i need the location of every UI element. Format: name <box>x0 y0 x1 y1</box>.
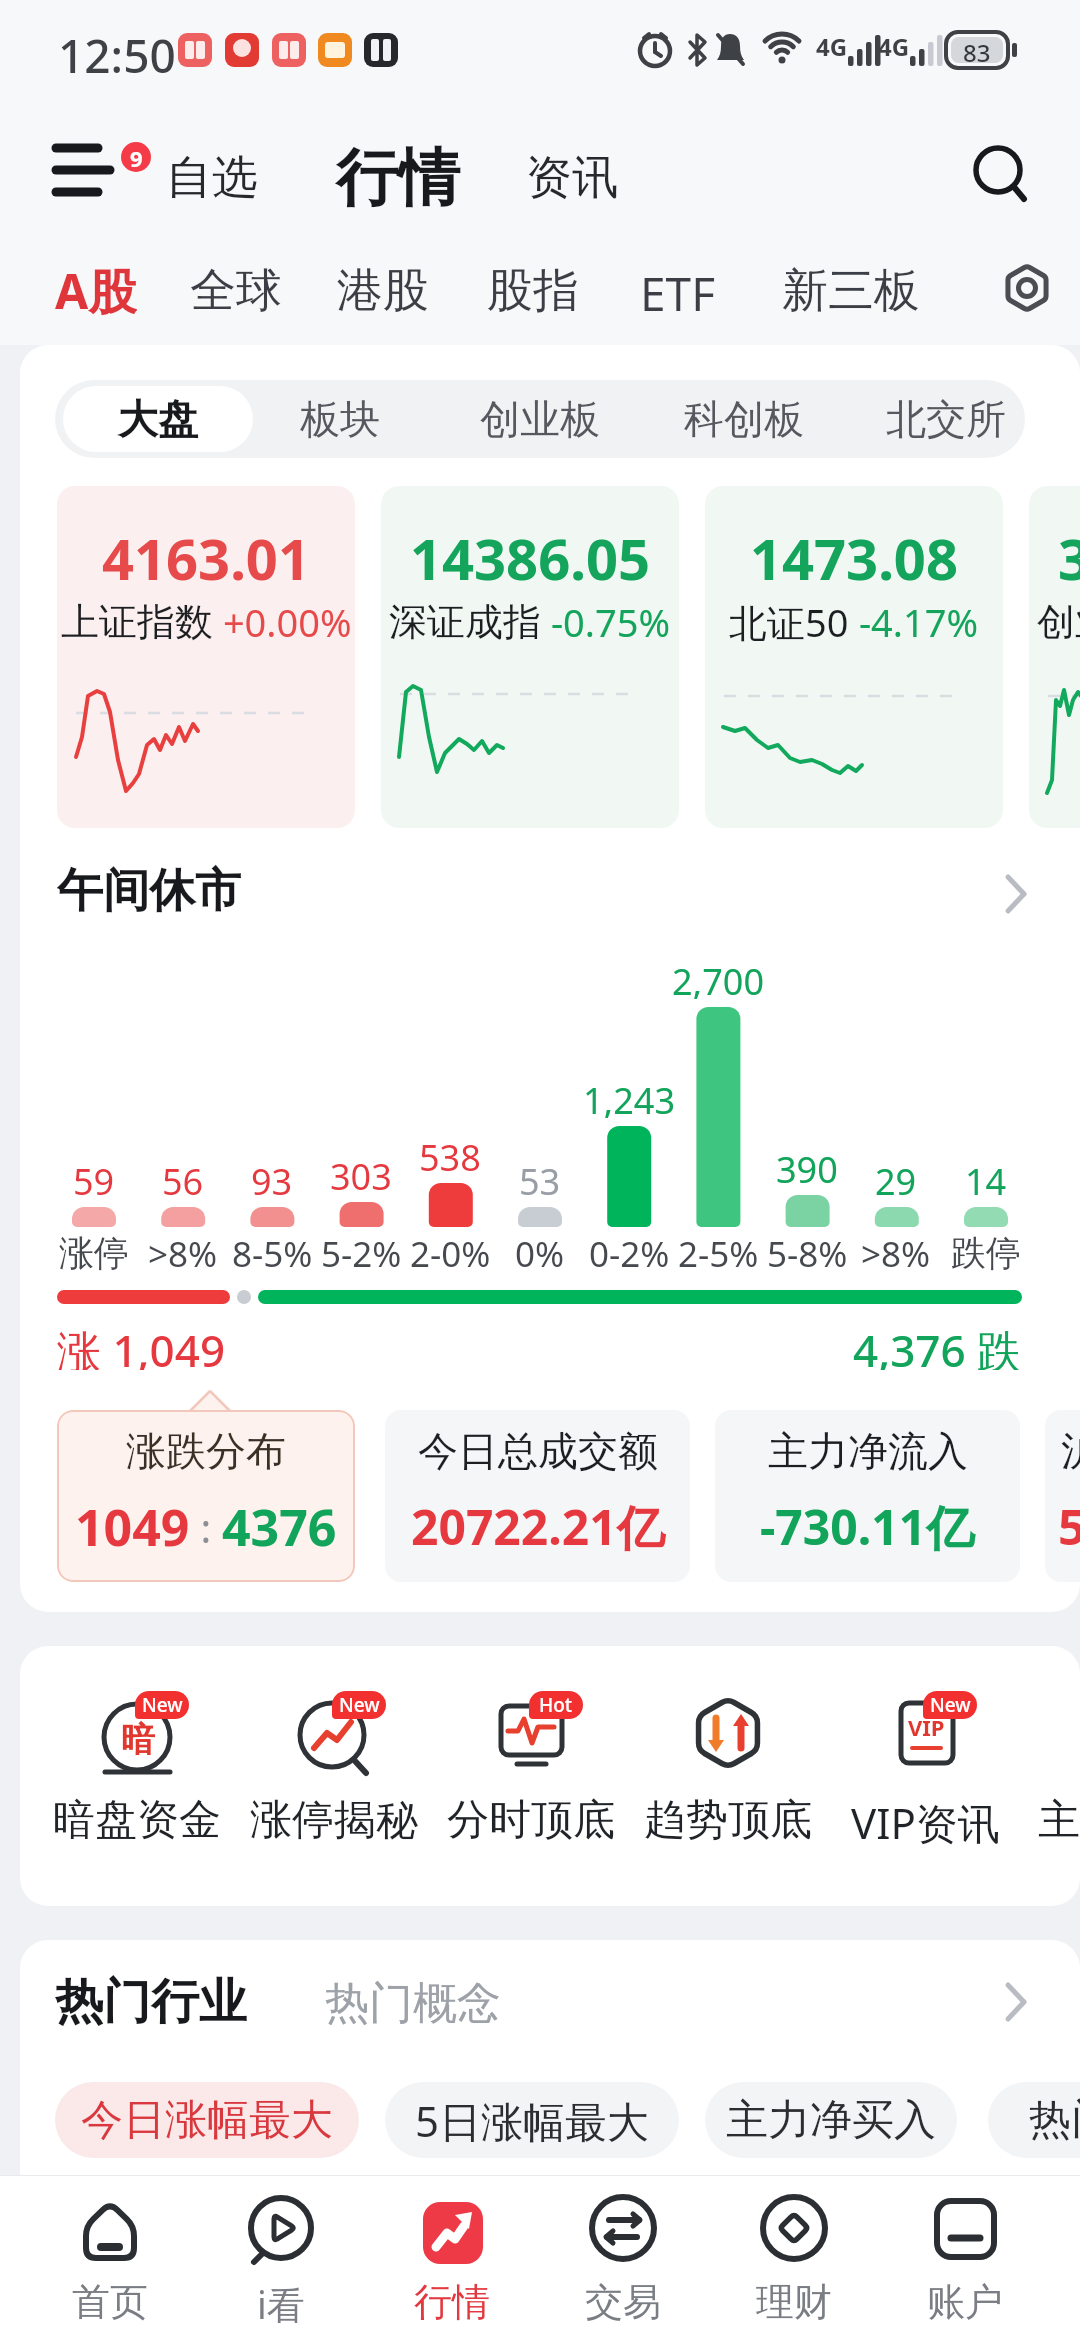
staticText: 涨停揭秘 <box>250 1794 418 1846</box>
staticText: 56 <box>162 1157 204 1199</box>
button[interactable]: 创业板 <box>465 386 615 452</box>
staticText: 今日涨幅最大 <box>81 2094 333 2147</box>
staticText: 2-0% <box>410 1230 491 1276</box>
button[interactable] <box>543 2180 703 2340</box>
staticText: 分时顶底 <box>447 1794 615 1846</box>
button[interactable]: 港股 <box>337 262 432 318</box>
staticText: 5-2% <box>321 1230 402 1276</box>
staticText: 板块 <box>300 394 380 444</box>
staticText: 29 <box>875 1157 917 1199</box>
button[interactable] <box>441 1670 621 1870</box>
staticText: 热门概念 <box>325 1976 501 2031</box>
staticText: 北证50 <box>729 596 849 648</box>
staticText: 14 <box>965 1157 1007 1199</box>
button[interactable]: 北交所 <box>871 386 1021 452</box>
button[interactable]: 全球 <box>190 262 285 318</box>
staticText: 主力净流入 <box>768 1426 968 1476</box>
button[interactable] <box>381 486 679 828</box>
staticText: >8% <box>861 1230 931 1276</box>
button[interactable] <box>835 1670 1015 1870</box>
staticText: ETF <box>640 262 716 318</box>
staticText: 今日总成交额 <box>418 1426 658 1476</box>
staticText: 暗盘资金 <box>53 1794 221 1846</box>
staticText: 涨 1,049 <box>57 1320 226 1370</box>
staticText: 20722.21亿 <box>411 1494 665 1560</box>
button[interactable]: 板块 <box>290 386 390 452</box>
staticText: -0.75% <box>541 596 671 648</box>
staticText: 2,700 <box>672 957 765 999</box>
button[interactable] <box>998 258 1058 318</box>
staticText: 55.20亿 <box>1058 1494 1080 1560</box>
button[interactable] <box>244 1670 424 1870</box>
button[interactable] <box>57 486 355 828</box>
button[interactable] <box>385 1410 690 1582</box>
staticText: 创业板 <box>480 394 600 444</box>
staticText: 涨跌分布 <box>126 1426 286 1476</box>
staticText: 5日涨幅最大 <box>415 2092 650 2149</box>
button[interactable] <box>201 2180 361 2340</box>
staticText: 账户 <box>927 2278 1003 2326</box>
button[interactable] <box>372 2180 532 2340</box>
staticText: 全球 <box>190 262 282 318</box>
button[interactable] <box>57 1410 355 1582</box>
button[interactable]: 今日涨幅最大 <box>55 2082 359 2158</box>
staticText: 主力追踪 <box>1038 1794 1080 1846</box>
button[interactable] <box>47 1670 227 1870</box>
staticText: 93 <box>251 1157 293 1199</box>
staticText: 1473.08 <box>750 520 958 586</box>
staticText: 14386.05 <box>410 520 650 586</box>
staticText: i看 <box>257 2278 305 2326</box>
staticText: 4G <box>816 30 848 56</box>
staticText: >8% <box>148 1230 218 1276</box>
staticText: 0% <box>515 1230 565 1276</box>
staticText: 大盘 <box>118 394 198 444</box>
button[interactable]: 自选 <box>158 148 266 208</box>
staticText: 深证成指 <box>389 598 541 646</box>
staticText: 涨停 <box>59 1231 129 1275</box>
button[interactable] <box>1029 486 1080 828</box>
staticText: 新三板 <box>782 262 920 318</box>
button[interactable]: 资讯 <box>518 148 626 208</box>
button[interactable] <box>966 138 1036 208</box>
staticText: 538 <box>419 1133 481 1175</box>
button[interactable]: A股 <box>55 258 145 320</box>
button[interactable] <box>715 1410 1020 1582</box>
staticText: Hot <box>539 1692 573 1718</box>
button[interactable]: 5日涨幅最大 <box>385 2082 679 2158</box>
button[interactable]: 行情 <box>325 138 470 218</box>
button[interactable] <box>638 1670 818 1870</box>
staticText: 9 <box>130 143 143 171</box>
button[interactable]: 热门大单 <box>988 2082 1080 2158</box>
staticText: 53 <box>519 1157 561 1199</box>
staticText: 科创板 <box>684 394 804 444</box>
staticText: 303 <box>330 1152 392 1194</box>
staticText: 理财 <box>756 2278 832 2326</box>
staticText: +0.00% <box>213 596 352 648</box>
staticText: -730.11亿 <box>760 1494 975 1560</box>
button[interactable]: 主力净买入 <box>705 2082 957 2158</box>
staticText: New <box>142 1692 183 1718</box>
button[interactable]: 股指 <box>487 262 582 318</box>
button[interactable] <box>714 2180 874 2340</box>
staticText: 沪深港通 <box>1061 1426 1080 1476</box>
staticText: 59 <box>73 1157 115 1199</box>
staticText: 自选 <box>166 149 258 207</box>
button[interactable] <box>885 2180 1045 2340</box>
staticText: 创业板指 <box>1037 598 1080 646</box>
button[interactable]: ETF <box>640 262 720 318</box>
button[interactable]: 热门概念 <box>325 1972 545 2034</box>
staticText: 股指 <box>487 262 579 318</box>
staticText: : <box>190 1500 222 1554</box>
button[interactable]: 热门行业 <box>55 1966 295 2038</box>
staticText: 1,243 <box>583 1076 676 1118</box>
button[interactable]: 新三板 <box>782 262 922 318</box>
button[interactable]: 科创板 <box>669 386 819 452</box>
staticText: 上证指数 <box>61 598 213 646</box>
button[interactable] <box>705 486 1003 828</box>
staticText: 资讯 <box>526 149 618 207</box>
staticText: 行情 <box>414 2278 490 2326</box>
button[interactable] <box>30 2180 190 2340</box>
button[interactable] <box>40 130 170 220</box>
button[interactable] <box>1032 1670 1080 1870</box>
button[interactable] <box>63 386 253 452</box>
